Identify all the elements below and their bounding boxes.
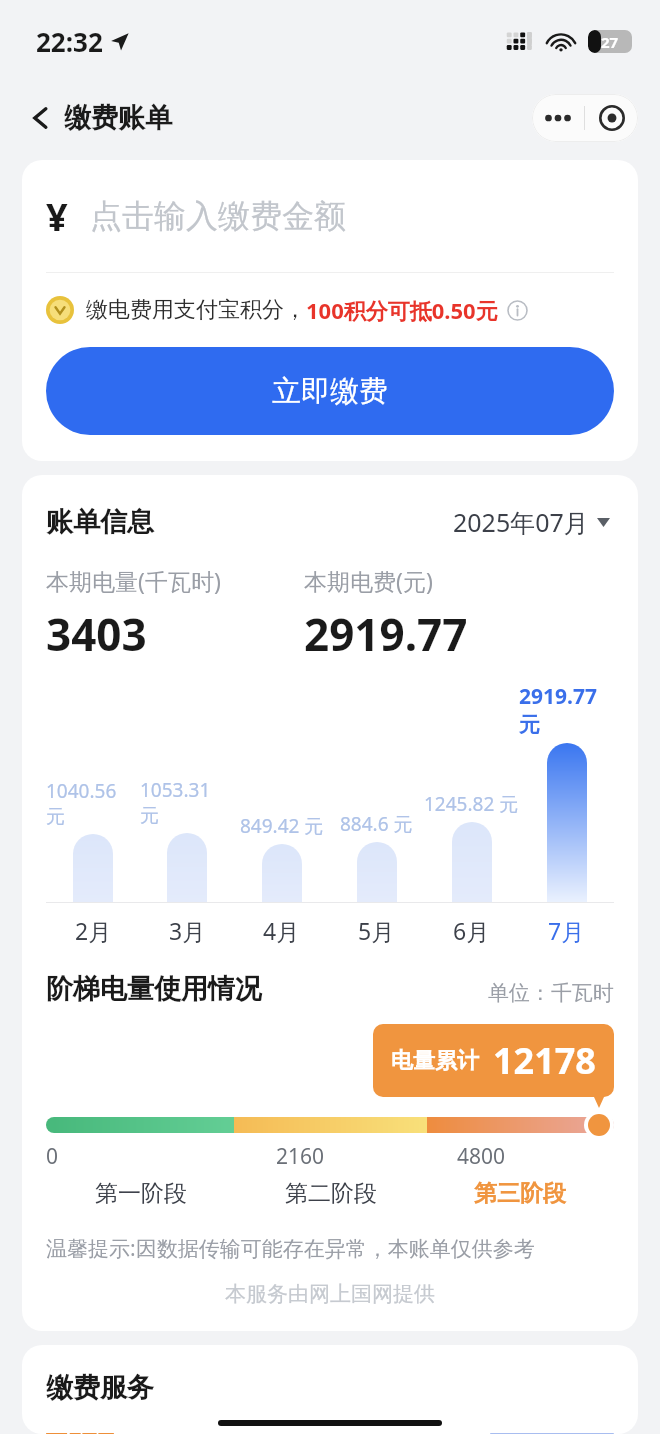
staticText: 2025年07月: [453, 505, 589, 539]
staticText: 5月: [358, 915, 395, 946]
staticText: 立即缴费: [272, 373, 388, 410]
staticText: 阶梯电量使用情况: [46, 972, 262, 1006]
staticText: 单位：千瓦时: [488, 980, 614, 1006]
button[interactable]: Back: [26, 97, 176, 139]
staticText: 3月: [169, 915, 206, 946]
staticText: 2919.77: [304, 604, 468, 664]
staticText: 第三阶段: [474, 1179, 566, 1208]
staticText: 缴电费用支付宝积分，: [86, 296, 306, 324]
staticText: 22:32: [36, 24, 103, 59]
button[interactable]: 立即缴费: [46, 347, 614, 435]
staticText: 本期电费(元): [304, 565, 433, 596]
staticText: 3403: [46, 604, 147, 664]
button[interactable]: 2025年07月: [449, 501, 614, 543]
staticText: 2160: [276, 1142, 325, 1171]
staticText: 12178: [493, 1036, 596, 1085]
staticText: 884.6 元: [340, 811, 413, 837]
button[interactable]: More options: [532, 94, 584, 142]
staticText: 2919.77 元: [519, 682, 614, 738]
staticText: 1245.82 元: [424, 791, 519, 817]
staticText: 账单信息: [46, 505, 154, 539]
button[interactable]: 缴费记录: [46, 1433, 614, 1434]
staticText: 849.42 元: [240, 813, 324, 839]
staticText: 本期电量(千瓦时): [46, 565, 221, 596]
staticText: 7月: [548, 915, 585, 946]
button[interactable]: Close: [585, 94, 638, 142]
other: Back: [30, 107, 52, 129]
staticText: 4800: [457, 1142, 506, 1171]
staticText: 第二阶段: [285, 1179, 377, 1208]
staticText: ¥: [46, 190, 68, 242]
staticText: 第一阶段: [95, 1179, 187, 1208]
button[interactable]: ¥: [22, 182, 638, 250]
staticText: 6月: [453, 915, 490, 946]
other: Info: [507, 300, 528, 321]
staticText: 缴费账单: [64, 101, 172, 135]
staticText: 1053.31 元: [140, 777, 234, 828]
staticText: 27: [601, 32, 619, 52]
staticText: 电量累计: [391, 1047, 479, 1075]
staticText: 4月: [263, 915, 300, 946]
staticText: 2月: [75, 915, 112, 946]
staticText: 点击输入缴费金额: [90, 196, 346, 236]
button[interactable]: 缴电费用支付宝积分，: [22, 295, 638, 325]
staticText: 1040.56 元: [46, 778, 140, 829]
staticText: 温馨提示:因数据传输可能存在异常，本账单仅供参考: [46, 1234, 535, 1263]
staticText: 本服务由网上国网提供: [225, 1281, 435, 1307]
staticText: 0: [46, 1142, 59, 1171]
staticText: 缴费服务: [46, 1371, 154, 1405]
staticText: 100积分可抵0.50元: [306, 295, 498, 325]
